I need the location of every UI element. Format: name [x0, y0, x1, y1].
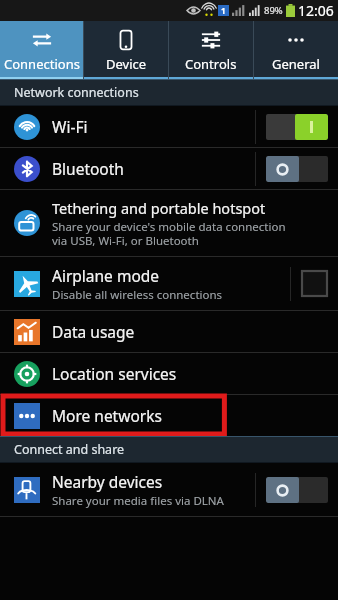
staticText: 89% [264, 4, 283, 17]
button[interactable]: Airplane mode checkbox [301, 270, 328, 297]
staticText: Disable all wireless connections [52, 287, 223, 303]
staticText: Network connections [14, 84, 139, 101]
staticText: Connections [4, 55, 80, 73]
button[interactable]: More networks [0, 395, 338, 436]
button[interactable]: Connections [0, 21, 83, 79]
button[interactable]: Data usage [0, 311, 338, 352]
button[interactable]: Device [84, 21, 168, 79]
button[interactable]: Tethering and portable hotspot [0, 190, 338, 256]
staticText: General [272, 55, 320, 73]
button[interactable]: Wi-Fi [0, 106, 338, 147]
staticText: Airplane mode [52, 265, 160, 286]
staticText: Connect and share [14, 441, 125, 458]
button[interactable]: Toggle off [266, 477, 328, 503]
staticText: 12:06 [298, 1, 334, 20]
staticText: More networks [52, 405, 162, 426]
staticText: Share your media files via DLNA [52, 493, 224, 509]
staticText: Controls [185, 55, 237, 73]
button[interactable]: Airplane mode [0, 257, 338, 310]
button[interactable]: Controls [169, 21, 253, 79]
staticText: Data usage [52, 321, 135, 342]
button[interactable]: Toggle off [266, 156, 328, 182]
staticText: Tethering and portable hotspot [52, 198, 266, 218]
staticText: 1 [221, 5, 226, 16]
staticText: Bluetooth [52, 158, 124, 179]
button[interactable]: Wi-Fi on [266, 114, 328, 140]
staticText: Device [106, 55, 147, 73]
button[interactable]: Nearby devices [0, 463, 338, 516]
button[interactable]: Location services [0, 353, 338, 394]
staticText: Location services [52, 363, 177, 384]
button[interactable]: General [254, 21, 338, 79]
staticText: Wi-Fi [52, 116, 88, 137]
staticText: Nearby devices [52, 471, 163, 492]
staticText: Share your device's mobile data connecti… [52, 219, 286, 248]
button[interactable]: Bluetooth [0, 148, 338, 189]
